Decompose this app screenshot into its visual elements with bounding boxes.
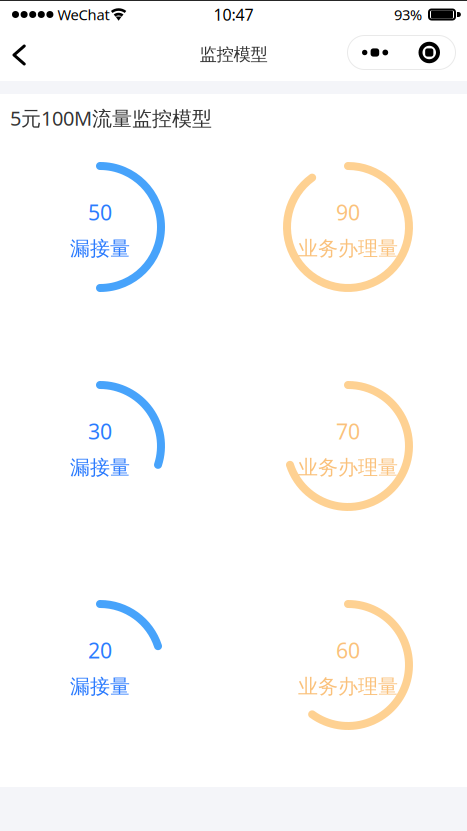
staticText: 业务办理量 [298,455,398,480]
staticText: 90 [336,198,360,226]
staticText: 漏接量 [70,236,130,261]
staticText: 20 [88,636,112,664]
staticText: 10:47 [213,4,253,25]
staticText: 70 [336,417,360,445]
staticText: 漏接量 [70,674,130,699]
staticText: 5元100M流量监控模型 [10,105,212,131]
staticText: 50 [88,198,112,226]
staticText: 业务办理量 [298,674,398,699]
staticText: 93% [394,5,422,24]
staticText: 监控模型 [199,44,267,65]
staticText: WeChat [57,5,109,24]
staticText: 60 [336,636,360,664]
button[interactable]: More options [347,35,456,70]
staticText: 漏接量 [70,455,130,480]
staticText: 30 [88,417,112,445]
staticText: 业务办理量 [298,236,398,261]
button[interactable]: Back [0,33,38,77]
